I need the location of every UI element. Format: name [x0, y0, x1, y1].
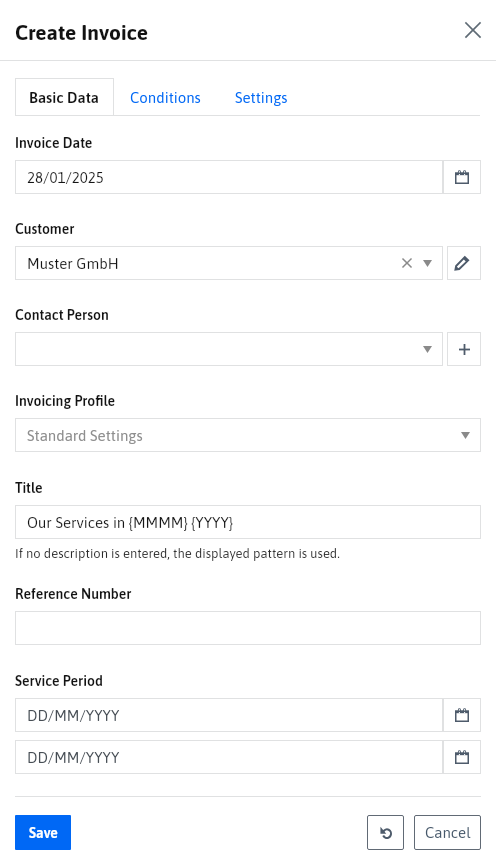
button[interactable]: Conditions [114, 78, 217, 116]
staticText: Save [29, 825, 58, 841]
button[interactable]: Basic Data [15, 78, 114, 116]
staticText: Muster GmbH [27, 255, 403, 272]
staticText: Service Period [15, 673, 103, 689]
button[interactable]: Reset [367, 815, 404, 850]
button[interactable]: Muster GmbH [15, 246, 443, 280]
button[interactable]: 28/01/2025 [15, 160, 443, 194]
button[interactable]: Cancel [414, 815, 481, 850]
button[interactable]: Add contact person [447, 332, 481, 366]
button[interactable]: Pick invoice date [443, 160, 481, 194]
staticText: DD/MM/YYYY [27, 749, 432, 766]
staticText: 28/01/2025 [27, 169, 432, 186]
staticText: Cancel [425, 824, 471, 841]
staticText: Customer [15, 221, 75, 237]
staticText: Settings [235, 89, 288, 106]
staticText: Standard Settings [27, 427, 461, 444]
staticText: Create Invoice [15, 20, 148, 44]
staticText: Invoice Date [15, 135, 93, 151]
button[interactable]: Settings [217, 78, 306, 116]
button[interactable]: Close [453, 10, 493, 50]
staticText: Title [15, 480, 43, 496]
button[interactable]: Pick end date [443, 740, 481, 774]
staticText: Conditions [130, 89, 201, 106]
staticText: Reference Number [15, 586, 132, 602]
button[interactable] [15, 611, 481, 645]
button[interactable]: Edit customer [447, 246, 481, 280]
staticText: Contact Person [15, 307, 109, 323]
staticText: Invoicing Profile [15, 393, 116, 409]
button[interactable]: Save [15, 815, 71, 850]
staticText: Basic Data [29, 89, 100, 106]
button[interactable]: DD/MM/YYYY [15, 740, 443, 774]
staticText: If no description is entered, the displa… [15, 546, 340, 561]
button[interactable]: DD/MM/YYYY [15, 698, 443, 732]
staticText: Our Services in {MMMM} {YYYY} [27, 514, 470, 531]
staticText: DD/MM/YYYY [27, 707, 432, 724]
button[interactable]: Pick start date [443, 698, 481, 732]
button[interactable]: Standard Settings [15, 418, 481, 452]
button[interactable] [15, 332, 443, 366]
button[interactable]: Our Services in {MMMM} {YYYY} [15, 505, 481, 539]
